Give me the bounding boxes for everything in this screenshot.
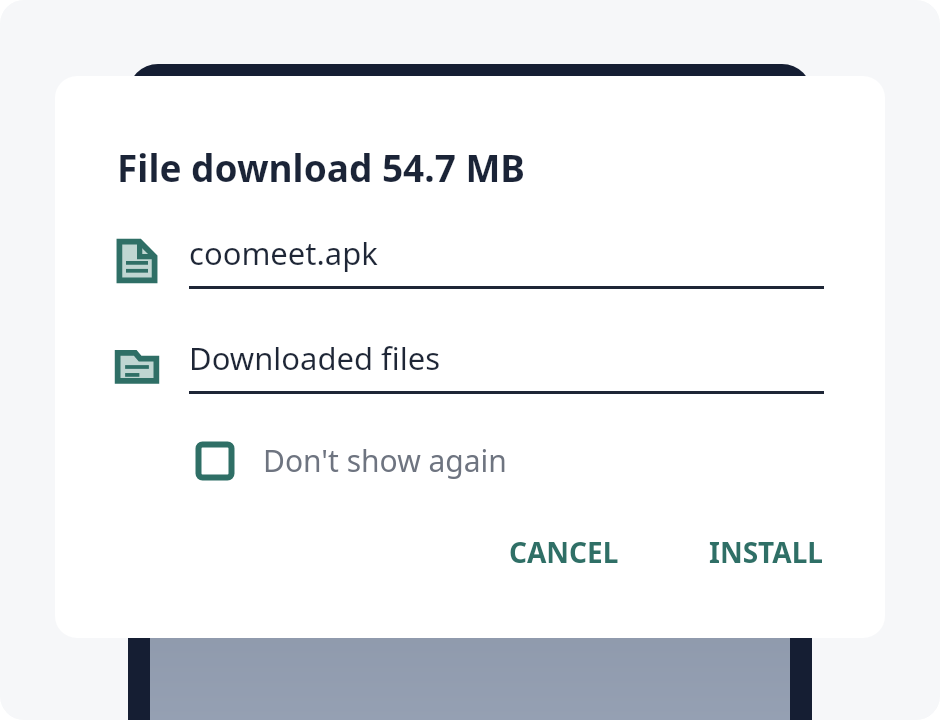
staticText: Downloaded files <box>189 337 441 379</box>
staticText: coomeet.apk <box>189 232 378 274</box>
other: File <box>115 239 159 283</box>
other: Folder <box>115 344 159 388</box>
staticText: Don't show again <box>263 440 507 481</box>
button[interactable]: CANCEL <box>491 521 637 583</box>
button[interactable]: Don't show again <box>191 434 511 487</box>
staticText: CANCEL <box>509 533 619 571</box>
staticText: File download 54.7 MB <box>117 142 525 192</box>
button[interactable]: Folder <box>55 337 885 394</box>
button[interactable]: File <box>55 232 885 289</box>
button[interactable]: INSTALL <box>691 521 841 583</box>
staticText: INSTALL <box>709 533 823 571</box>
